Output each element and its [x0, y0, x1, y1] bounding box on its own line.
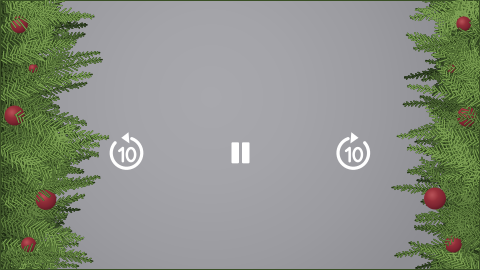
- button[interactable]: Pause: [211, 124, 269, 182]
- button[interactable]: Skip forward 10 seconds: [324, 122, 382, 180]
- button[interactable]: Skip back 10 seconds: [97, 122, 155, 180]
